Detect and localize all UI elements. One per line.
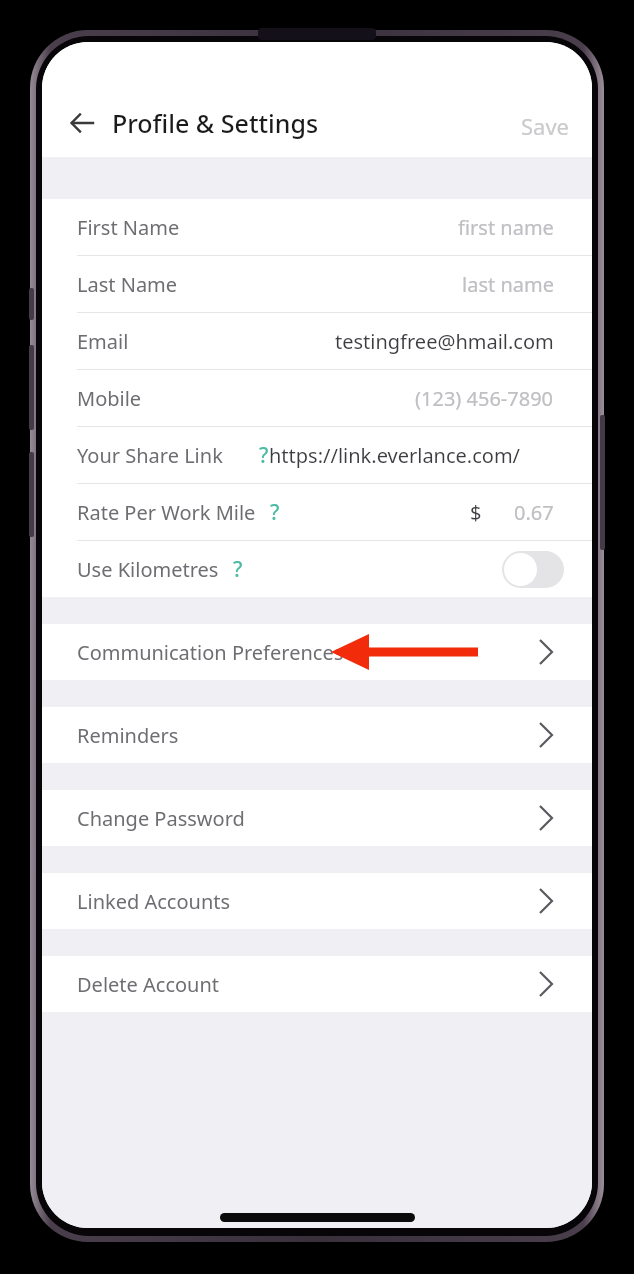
staticText: testingfree@hmail.com xyxy=(335,328,554,355)
button[interactable]: Rate Per Work Mile xyxy=(42,484,592,540)
button[interactable]: Last Name xyxy=(42,256,592,312)
button[interactable]: Change Password xyxy=(42,790,592,846)
staticText: Rate Per Work Mile xyxy=(77,499,256,526)
staticText: Linked Accounts xyxy=(77,888,231,915)
staticText: Email xyxy=(77,328,129,355)
staticText: Last Name xyxy=(77,271,178,298)
button[interactable]: First Name xyxy=(42,199,592,255)
staticText: ? xyxy=(270,498,280,527)
staticText: ? xyxy=(259,441,269,470)
button[interactable]: Your Share Link xyxy=(42,427,592,483)
staticText: Profile & Settings xyxy=(112,106,319,140)
staticText: Reminders xyxy=(77,722,179,749)
staticText: Mobile xyxy=(77,385,142,412)
button[interactable]: Use Kilometres toggle xyxy=(502,551,564,588)
button[interactable]: Communication Preferences xyxy=(42,624,592,680)
button[interactable]: Mobile xyxy=(42,370,592,426)
staticText: last name xyxy=(462,271,554,298)
button[interactable]: Back xyxy=(60,101,104,145)
staticText: First Name xyxy=(77,214,180,241)
staticText: Your Share Link xyxy=(77,442,223,469)
staticText: 0.67 xyxy=(514,499,554,526)
staticText: Communication Preferences xyxy=(77,639,344,666)
button[interactable]: Email xyxy=(42,313,592,369)
staticText: https://link.everlance.com/NK… xyxy=(269,442,554,469)
button[interactable]: Reminders xyxy=(42,707,592,763)
staticText: first name xyxy=(458,214,554,241)
staticText: Save xyxy=(521,111,570,141)
staticText: Delete Account xyxy=(77,971,220,998)
button[interactable]: Save xyxy=(509,103,582,149)
staticText: Use Kilometres xyxy=(77,556,219,583)
staticText: (123) 456-7890 xyxy=(415,385,554,412)
staticText: $ xyxy=(470,499,482,526)
button[interactable]: Delete Account xyxy=(42,956,592,1012)
staticText: Change Password xyxy=(77,805,245,832)
button[interactable]: Linked Accounts xyxy=(42,873,592,929)
staticText: ? xyxy=(233,555,243,584)
